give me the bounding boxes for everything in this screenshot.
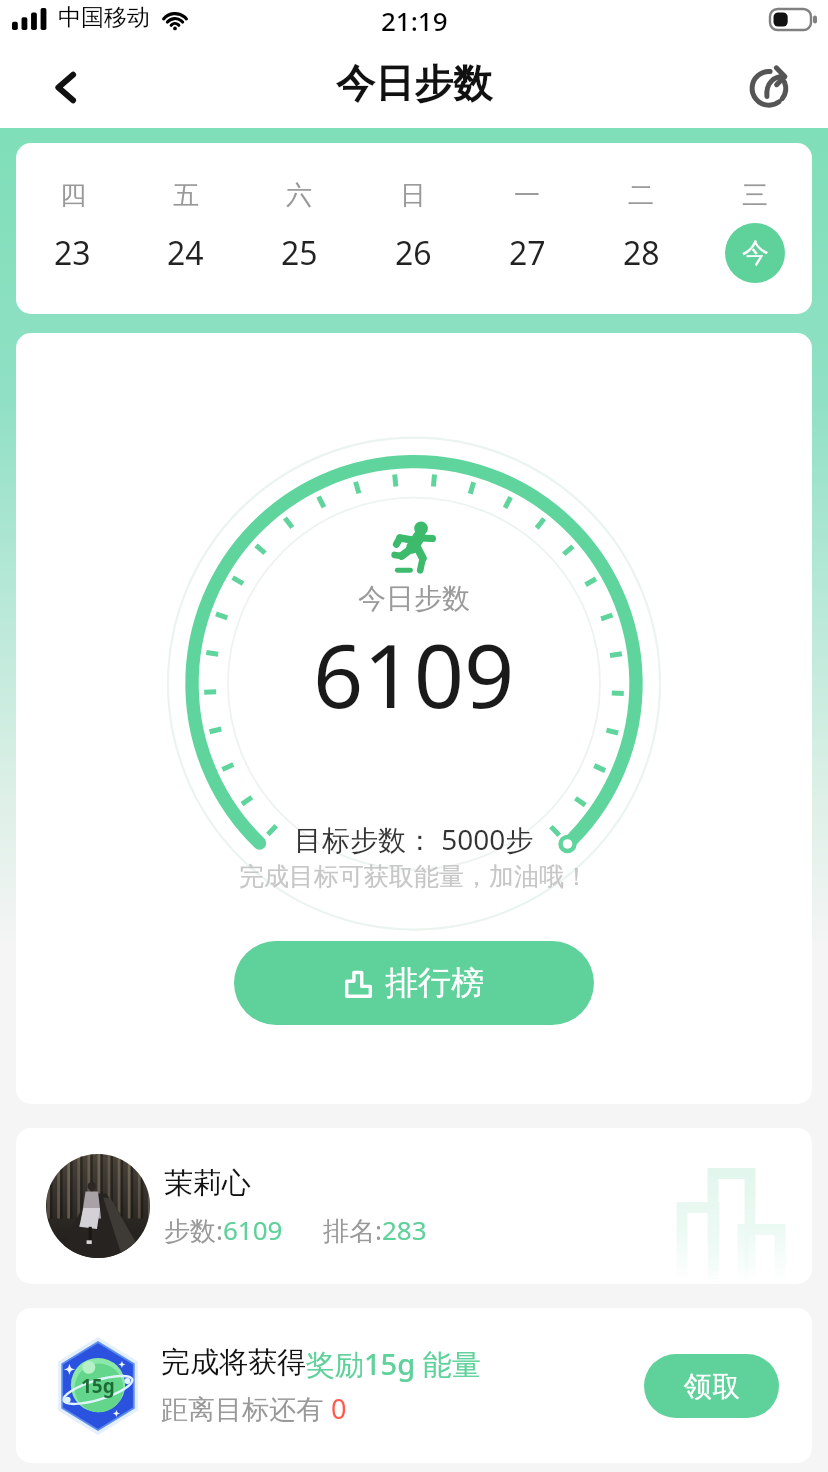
button[interactable]: 排行榜 xyxy=(234,941,594,1025)
button[interactable]: 二 xyxy=(584,143,698,314)
button[interactable]: Share xyxy=(744,58,798,112)
staticText: 完成将获得 xyxy=(161,1344,306,1381)
button[interactable]: 领取 xyxy=(644,1354,779,1418)
staticText: 6109 xyxy=(223,1212,283,1247)
staticText: 步数: xyxy=(164,1212,223,1248)
staticText: 四 xyxy=(60,179,86,212)
button[interactable]: 日 xyxy=(356,143,470,314)
button[interactable]: 四 xyxy=(16,143,129,314)
staticText: 283 xyxy=(382,1212,427,1247)
button[interactable]: 茉莉心 xyxy=(16,1128,812,1284)
button[interactable]: Back xyxy=(37,61,93,117)
staticText: 今日步数 xyxy=(358,581,470,616)
staticText: 0 xyxy=(331,1390,347,1427)
staticText: 五 xyxy=(173,179,199,212)
staticText: 领取 xyxy=(684,1369,740,1404)
staticText: 日 xyxy=(400,179,426,212)
staticText: 完成目标可获取能量，加油哦！ xyxy=(239,861,589,892)
staticText: 距离目标还有 xyxy=(161,1390,331,1427)
staticText: 六 xyxy=(286,179,312,212)
button[interactable]: 六 xyxy=(242,143,356,314)
button[interactable]: 五 xyxy=(129,143,242,314)
staticText: 奖励15g 能量 xyxy=(306,1344,481,1384)
staticText: 三 xyxy=(742,179,768,212)
staticText: 6109 xyxy=(313,614,515,734)
staticText: 25 xyxy=(281,231,318,275)
staticText: 茉莉心 xyxy=(164,1165,251,1202)
staticText: 二 xyxy=(628,179,654,212)
staticText: 26 xyxy=(395,231,432,275)
staticText: 排名: xyxy=(323,1212,382,1248)
staticText: 15g xyxy=(81,1373,115,1399)
staticText: 28 xyxy=(623,231,660,275)
button[interactable]: 三 xyxy=(698,143,812,314)
staticText: 21:19 xyxy=(381,3,448,38)
staticText: 27 xyxy=(509,231,546,275)
staticText: 23 xyxy=(54,231,91,275)
staticText: 24 xyxy=(167,231,204,275)
staticText: 排行榜 xyxy=(385,962,484,1004)
button[interactable]: 一 xyxy=(470,143,584,314)
staticText: 一 xyxy=(514,179,540,212)
staticText: 中国移动 xyxy=(58,3,150,32)
staticText: 目标步数： 5000步 xyxy=(294,820,534,858)
staticText: 今日步数 xyxy=(336,59,492,108)
staticText: 今 xyxy=(742,236,769,270)
